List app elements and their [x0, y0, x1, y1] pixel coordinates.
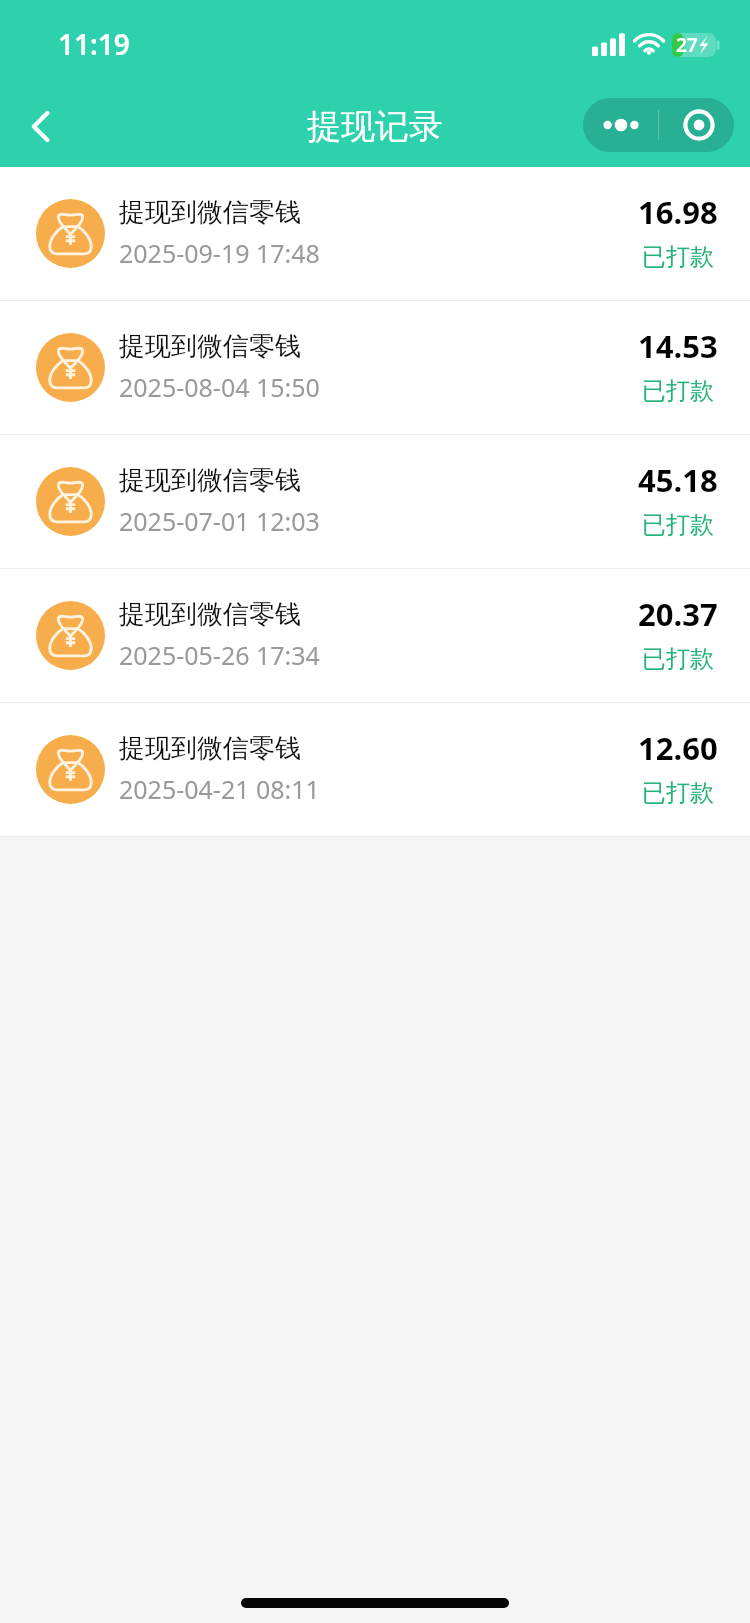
button[interactable]: Back [13, 98, 69, 154]
staticText: 提现到微信零钱 [119, 196, 301, 229]
button[interactable]: 提现到微信零钱 [0, 167, 750, 300]
button[interactable]: 提现到微信零钱 [0, 301, 750, 434]
button[interactable]: 提现到微信零钱 [0, 435, 750, 568]
staticText: 16.98 [638, 191, 718, 233]
other: Cellular signal [592, 33, 625, 56]
staticText: 20.37 [638, 593, 718, 635]
staticText: 14.53 [638, 325, 718, 367]
staticText: 2025-09-19 17:48 [119, 236, 320, 270]
staticText: 已打款 [642, 510, 714, 540]
staticText: 2025-04-21 08:11 [119, 772, 320, 806]
button[interactable]: More options [583, 98, 658, 152]
staticText: 提现到微信零钱 [119, 732, 301, 765]
staticText: 已打款 [642, 376, 714, 406]
button[interactable]: 提现到微信零钱 [0, 569, 750, 702]
other: Wi-Fi [633, 33, 665, 55]
staticText: 2025-05-26 17:34 [119, 638, 320, 672]
other: Battery 27 percent, charging [672, 32, 720, 58]
staticText: 27 [676, 32, 698, 58]
staticText: 11:19 [58, 25, 130, 63]
staticText: 2025-08-04 15:50 [119, 370, 320, 404]
staticText: 45.18 [638, 459, 718, 501]
staticText: 2025-07-01 12:03 [119, 504, 320, 538]
staticText: 提现记录 [307, 105, 443, 148]
staticText: 12.60 [638, 727, 718, 769]
staticText: 已打款 [642, 242, 714, 272]
button[interactable]: 提现到微信零钱 [0, 703, 750, 836]
staticText: 提现到微信零钱 [119, 330, 301, 363]
staticText: 已打款 [642, 778, 714, 808]
button[interactable]: Close mini program [659, 98, 734, 152]
staticText: 提现到微信零钱 [119, 464, 301, 497]
staticText: 提现到微信零钱 [119, 598, 301, 631]
staticText: 已打款 [642, 644, 714, 674]
